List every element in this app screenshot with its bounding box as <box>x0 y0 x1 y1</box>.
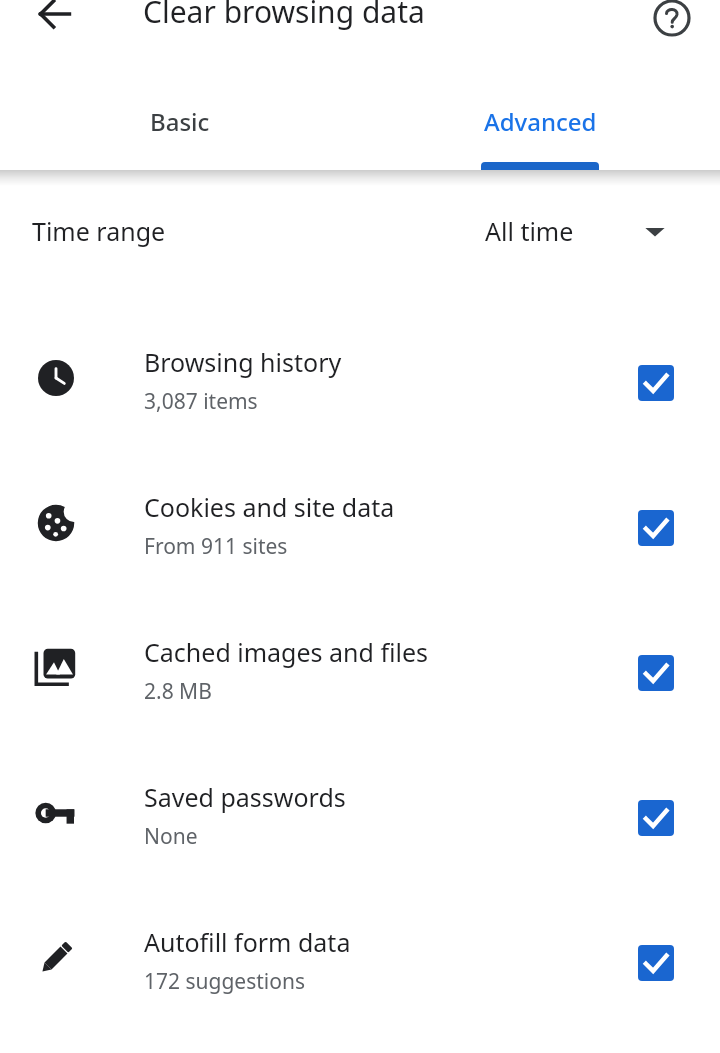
staticText: 3,087 items <box>144 387 258 416</box>
button[interactable]: Saved passwords <box>0 751 720 896</box>
staticText: From 911 sites <box>144 532 288 561</box>
button[interactable]: Autofill form data <box>0 896 720 1041</box>
button[interactable]: Saved passwords checkbox <box>638 800 674 836</box>
button[interactable]: Browsing history <box>0 316 720 461</box>
staticText: Clear browsing data <box>143 0 425 32</box>
staticText: Advanced <box>484 105 597 138</box>
button[interactable]: Autofill form data checkbox <box>638 945 674 981</box>
staticText: Saved passwords <box>144 780 346 814</box>
staticText: Cookies and site data <box>144 490 395 524</box>
button[interactable]: Browsing history checkbox <box>638 365 674 401</box>
staticText: Autofill form data <box>144 925 351 959</box>
staticText: Browsing history <box>144 345 342 379</box>
staticText: Time range <box>32 214 166 248</box>
button[interactable]: Cached images and files <box>0 606 720 751</box>
staticText: 172 suggestions <box>144 967 306 996</box>
button[interactable]: Cookies and site data checkbox <box>638 510 674 546</box>
button[interactable]: Cached images and files checkbox <box>638 655 674 691</box>
staticText: None <box>144 822 198 851</box>
button[interactable]: Advanced <box>360 56 720 170</box>
button[interactable]: Basic <box>0 56 360 170</box>
staticText: Basic <box>150 105 210 138</box>
staticText: Cached images and files <box>144 635 428 669</box>
button[interactable]: Back <box>31 0 79 38</box>
button[interactable]: Cookies and site data <box>0 461 720 606</box>
button[interactable]: Help <box>648 0 696 42</box>
button[interactable]: Time range <box>0 186 720 272</box>
staticText: All time <box>485 214 574 248</box>
staticText: 2.8 MB <box>144 677 212 706</box>
